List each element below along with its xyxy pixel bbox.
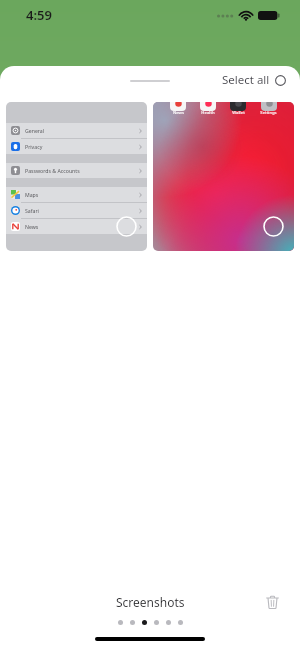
button[interactable]: Settings [261,102,277,111]
button[interactable]: News [170,102,186,111]
staticText: Settings [260,110,277,116]
button[interactable]: Privacy [6,139,147,154]
button[interactable]: General [6,123,147,138]
button[interactable]: Select all [218,69,290,91]
button[interactable]: News [153,102,294,251]
button[interactable]: Delete [261,591,284,614]
staticText: Privacy [25,143,43,150]
staticText: Safari [25,207,39,214]
staticText: 4:59 [26,6,52,24]
button[interactable]: Wallet [230,102,246,111]
button[interactable]: News [6,219,147,234]
button[interactable]: Safari [6,203,147,218]
staticText: General [25,127,45,134]
staticText: Passwords & Accounts [25,167,80,174]
staticText: News [173,110,184,116]
button[interactable]: Maps [6,187,147,202]
staticText: Screenshots [116,594,185,610]
button[interactable]: Passwords & Accounts [6,163,147,178]
button[interactable]: General [6,102,147,251]
staticText: Wallet [232,110,245,116]
button[interactable]: Health [200,102,216,111]
staticText: Maps [25,191,39,198]
staticText: News [25,223,39,230]
staticText: Select all [222,72,270,88]
staticText: Health [201,110,215,116]
